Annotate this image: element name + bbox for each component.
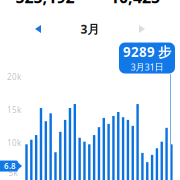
button[interactable]: Next month bbox=[132, 20, 152, 38]
staticText: 10k bbox=[7, 138, 21, 148]
staticText: 525,192 bbox=[15, 0, 74, 8]
staticText: 10,425 bbox=[110, 0, 160, 8]
staticText: 3月 bbox=[80, 21, 99, 37]
staticText: 5k bbox=[8, 168, 17, 178]
button[interactable]: 3月 bbox=[75, 21, 105, 37]
staticText: 9289 步 bbox=[123, 43, 171, 61]
staticText: 6.8 bbox=[4, 161, 16, 171]
button[interactable]: Previous month bbox=[28, 20, 48, 38]
staticText: 3月31日 bbox=[130, 61, 163, 73]
staticText: 20k bbox=[7, 72, 21, 82]
staticText: 15k bbox=[7, 105, 21, 115]
